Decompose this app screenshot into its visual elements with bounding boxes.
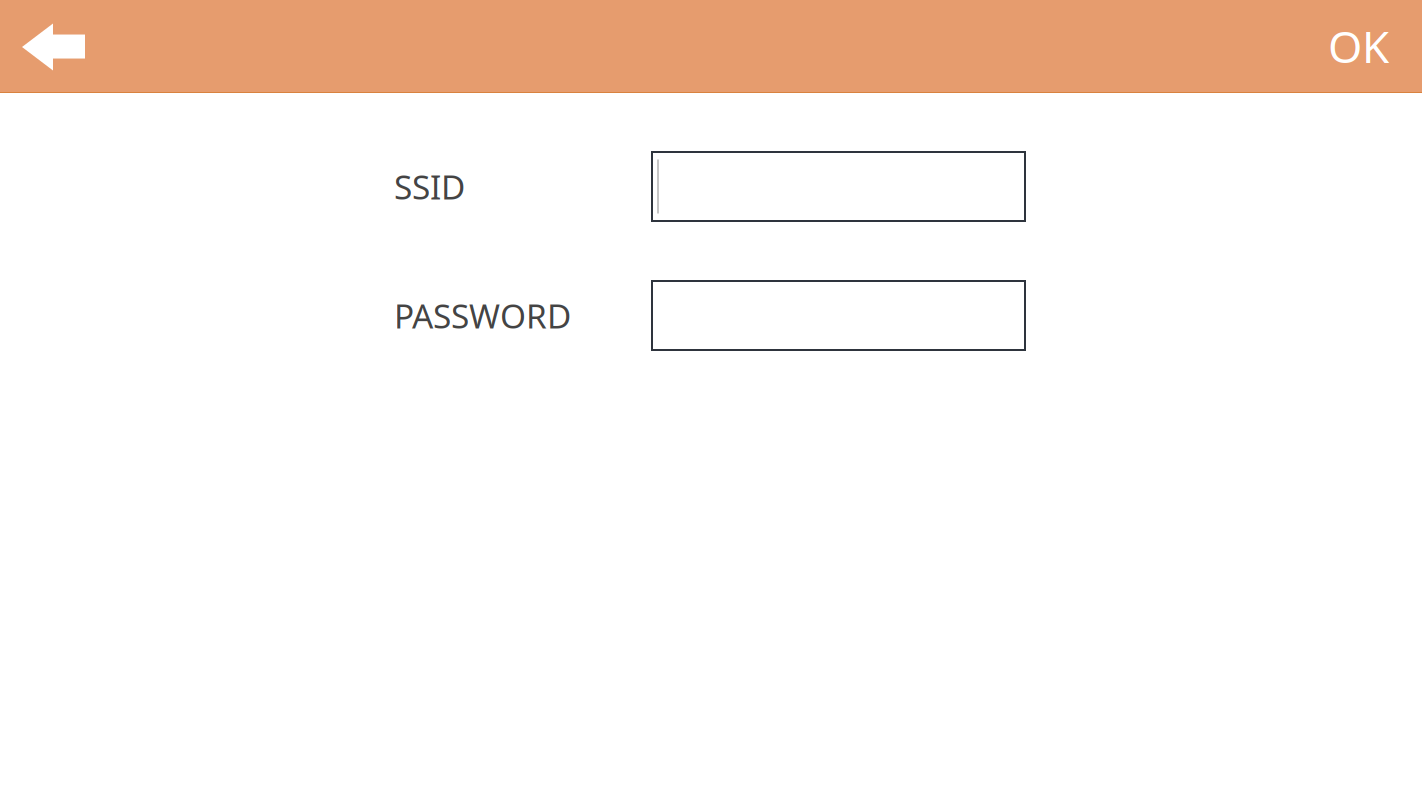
staticText: OK [1328, 17, 1389, 75]
staticText: SSID [394, 164, 465, 209]
button[interactable]: Back [0, 0, 105, 92]
staticText: PASSWORD [394, 293, 571, 338]
button[interactable]: SSID [652, 152, 1025, 221]
button[interactable]: OK [1308, 0, 1422, 92]
button[interactable]: PASSWORD [652, 281, 1025, 350]
